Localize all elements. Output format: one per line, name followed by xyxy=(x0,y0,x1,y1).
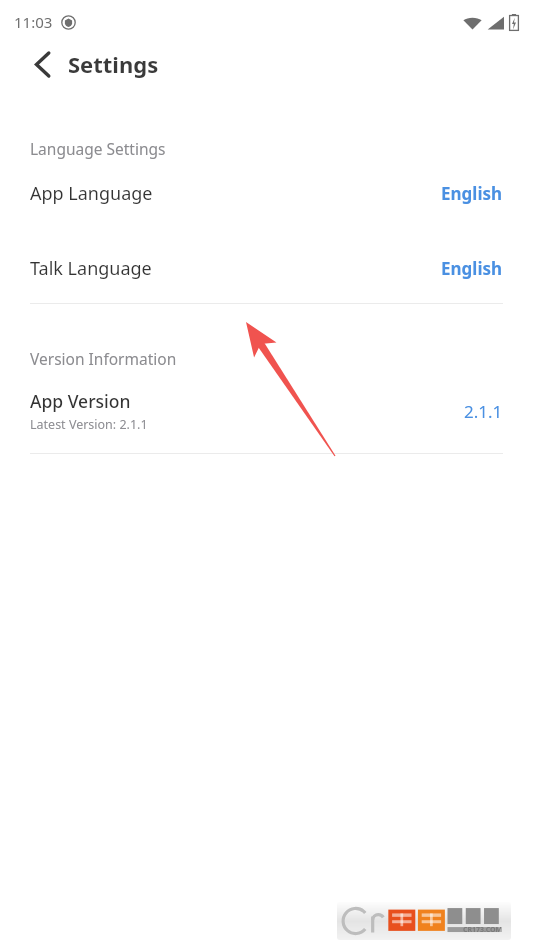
staticText: Latest Version: 2.1.1 xyxy=(30,416,148,433)
staticText: App Version xyxy=(30,389,131,413)
staticText: CR173.COM xyxy=(463,925,503,935)
button[interactable]: App Language xyxy=(0,177,533,210)
staticText: Talk Language xyxy=(30,256,152,281)
staticText: App Language xyxy=(30,181,153,206)
button[interactable]: Back xyxy=(22,44,62,84)
staticText: 11:03 xyxy=(14,12,53,32)
staticText: English xyxy=(441,182,503,205)
staticText: English xyxy=(441,257,503,280)
button[interactable]: App Version xyxy=(0,389,533,433)
button[interactable]: Talk Language xyxy=(0,252,533,285)
staticText: Language Settings xyxy=(30,138,166,159)
staticText: Settings xyxy=(68,49,159,79)
staticText: 2.1.1 xyxy=(464,400,503,423)
staticText: Version Information xyxy=(30,348,177,369)
